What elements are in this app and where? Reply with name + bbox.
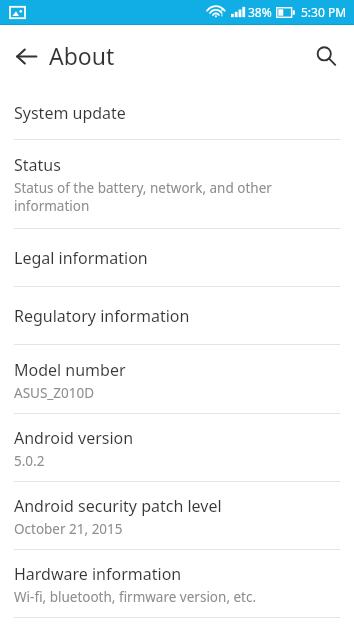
button[interactable]: System update xyxy=(0,86,354,139)
staticText: System update xyxy=(14,102,126,124)
staticText: Regulatory information xyxy=(14,305,190,327)
staticText: About xyxy=(49,40,115,71)
staticText: Android version xyxy=(14,427,134,449)
staticText: 5.0.2 xyxy=(14,452,45,470)
staticText: Android security patch level xyxy=(14,495,222,517)
button[interactable]: Legal information xyxy=(0,229,354,286)
button[interactable]: Search xyxy=(304,34,348,78)
staticText: Status xyxy=(14,154,61,176)
staticText: Model number xyxy=(14,359,126,381)
staticText: Legal information xyxy=(14,247,148,269)
staticText: Wi-fi, bluetooth, firmware version, etc. xyxy=(14,588,257,606)
staticText: October 21, 2015 xyxy=(14,520,123,538)
staticText: 5:30 PM xyxy=(301,4,347,20)
button[interactable]: Model number xyxy=(0,345,354,413)
button[interactable]: Android security patch level xyxy=(0,482,354,549)
staticText: 38% xyxy=(248,4,272,20)
staticText: Hardware information xyxy=(14,563,182,585)
button[interactable]: Back xyxy=(4,34,48,78)
button[interactable]: Hardware information xyxy=(0,550,354,617)
button[interactable]: Regulatory information xyxy=(0,287,354,344)
button[interactable]: Android version xyxy=(0,414,354,481)
staticText: ASUS_Z010D xyxy=(14,384,95,402)
button[interactable]: Status xyxy=(0,140,354,228)
staticText: Status of the battery, network, and othe… xyxy=(14,179,340,215)
